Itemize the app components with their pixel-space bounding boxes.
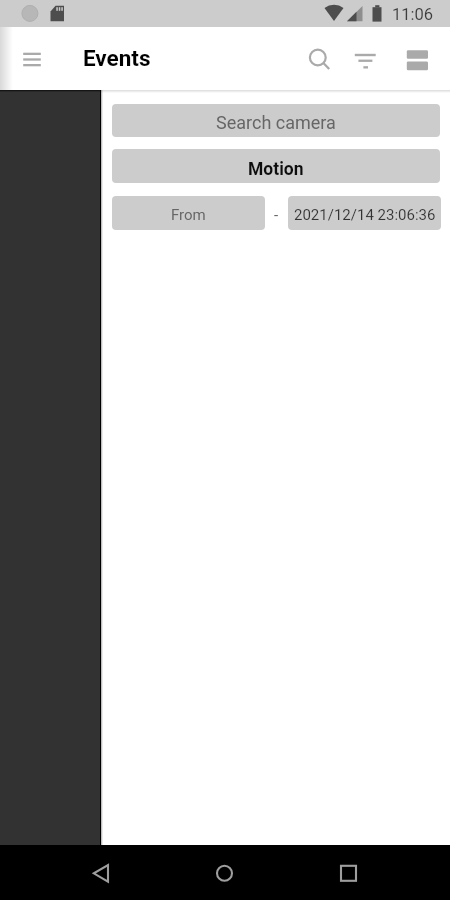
staticText: - [274,206,279,224]
button[interactable]: Filter [341,30,389,78]
staticText: Motion [248,159,304,180]
button[interactable]: Home [194,847,255,898]
button[interactable]: 2021/12/14 23:06:36 [288,196,441,230]
staticText: 2021/12/14 23:06:36 [294,206,436,224]
button[interactable]: Recent apps [318,847,379,898]
button[interactable]: Motion [112,149,440,183]
staticText: 11:06 [392,5,434,24]
button[interactable]: Search [294,30,342,78]
staticText: Search camera [216,112,336,133]
button[interactable]: Back [70,847,131,898]
button[interactable]: Open navigation menu [4,29,60,85]
button[interactable]: Search camera [112,104,440,137]
button[interactable]: From [112,196,265,230]
staticText: Events [83,45,151,71]
staticText: From [171,206,206,224]
button[interactable]: Change view mode [393,30,441,78]
